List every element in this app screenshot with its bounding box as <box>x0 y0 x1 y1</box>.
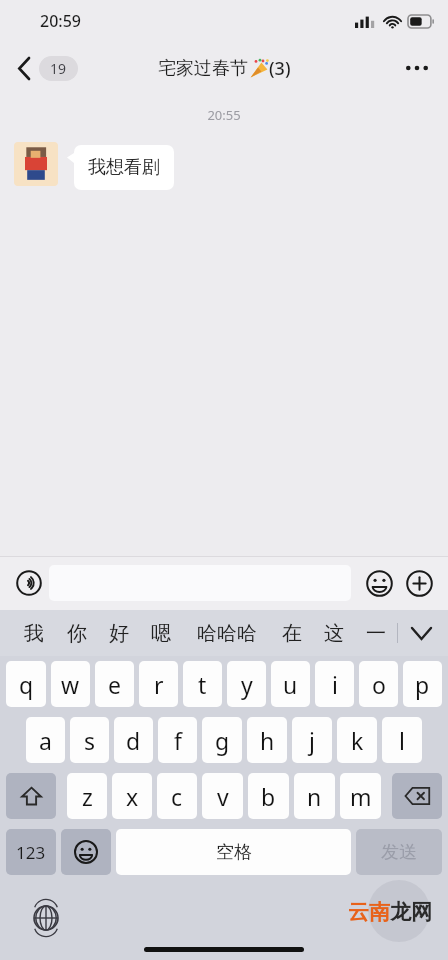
staticText: o <box>372 669 386 700</box>
button[interactable]: p <box>403 661 442 707</box>
staticText: s <box>84 725 96 756</box>
staticText: y <box>241 669 253 700</box>
staticText: i <box>332 669 338 700</box>
staticText: 宅家过春节 <box>158 57 248 80</box>
staticText: c <box>171 781 183 812</box>
button[interactable]: Voice input <box>9 563 49 603</box>
button[interactable]: h <box>247 717 287 763</box>
button[interactable]: 一 <box>355 610 397 656</box>
button[interactable]: Backspace <box>392 773 442 819</box>
staticText: a <box>39 725 52 756</box>
button[interactable]: 在 <box>271 610 313 656</box>
button[interactable]: a <box>26 717 65 763</box>
button[interactable]: 发送 <box>356 829 442 875</box>
button[interactable]: g <box>202 717 242 763</box>
button[interactable]: Switch language <box>26 898 66 938</box>
staticText: 发送 <box>381 841 417 864</box>
button[interactable]: 哈哈哈 <box>182 610 271 656</box>
staticText: f <box>174 725 182 756</box>
button[interactable]: f <box>158 717 197 763</box>
button[interactable]: 嗯 <box>140 610 182 656</box>
staticText: 19 <box>50 59 67 78</box>
staticText: t <box>198 669 207 700</box>
button[interactable]: Emoji <box>359 563 399 603</box>
button[interactable]: 空格 <box>116 829 351 875</box>
staticText: g <box>215 725 230 756</box>
button[interactable]: q <box>6 661 46 707</box>
staticText: 我 <box>24 621 44 646</box>
button[interactable]: More actions <box>399 563 439 603</box>
button[interactable]: j <box>292 717 332 763</box>
staticText: z <box>82 781 93 812</box>
button[interactable]: Hide keyboard <box>398 610 444 656</box>
button[interactable]: l <box>382 717 422 763</box>
staticText: b <box>261 781 276 812</box>
staticText: q <box>19 669 34 700</box>
staticText: 20:59 <box>40 10 81 32</box>
staticText: (3) <box>269 56 291 81</box>
button[interactable]: s <box>70 717 109 763</box>
button[interactable]: 123 <box>6 829 56 875</box>
staticText: l <box>399 725 405 756</box>
button[interactable]: 你 <box>55 610 98 656</box>
button[interactable]: Emoji keyboard <box>61 829 111 875</box>
staticText: 嗯 <box>151 621 171 646</box>
button[interactable]: o <box>359 661 398 707</box>
button[interactable]: u <box>271 661 310 707</box>
staticText: u <box>283 669 298 700</box>
staticText: 哈哈哈 <box>197 621 257 646</box>
staticText: n <box>307 781 322 812</box>
staticText: 我想看剧 <box>88 156 160 179</box>
button[interactable]: k <box>337 717 377 763</box>
staticText: 你 <box>67 621 87 646</box>
staticText: m <box>350 781 372 812</box>
staticText: v <box>217 781 229 812</box>
button[interactable]: 我 <box>12 610 55 656</box>
staticText: 123 <box>16 841 46 864</box>
staticText: 一 <box>366 621 386 646</box>
button[interactable]: y <box>227 661 266 707</box>
staticText: x <box>126 781 139 812</box>
staticText: 在 <box>282 621 302 646</box>
button[interactable]: r <box>139 661 178 707</box>
staticText: h <box>260 725 275 756</box>
button[interactable]: x <box>112 773 152 819</box>
button[interactable]: c <box>157 773 197 819</box>
staticText: w <box>61 669 80 700</box>
staticText: 20:55 <box>0 106 448 124</box>
button[interactable]: z <box>67 773 107 819</box>
button[interactable]: n <box>294 773 335 819</box>
button[interactable]: b <box>248 773 289 819</box>
button[interactable]: d <box>114 717 153 763</box>
staticText: 龙网 <box>390 899 432 925</box>
button[interactable]: Back, 19 unread <box>14 52 82 85</box>
staticText: e <box>108 669 121 700</box>
staticText: 好 <box>109 621 129 646</box>
button[interactable]: 好 <box>98 610 140 656</box>
button[interactable]: i <box>315 661 354 707</box>
staticText: k <box>351 725 364 756</box>
button[interactable]: Shift <box>6 773 56 819</box>
staticText: j <box>309 725 315 756</box>
button[interactable]: 我想看剧 <box>74 145 174 190</box>
button[interactable]: w <box>51 661 90 707</box>
button[interactable]: 这 <box>313 610 355 656</box>
button[interactable]: More options <box>396 55 438 81</box>
button[interactable]: v <box>202 773 243 819</box>
staticText: r <box>154 669 164 700</box>
staticText: 云南 <box>348 899 390 925</box>
button[interactable]: t <box>183 661 222 707</box>
staticText: p <box>415 669 430 700</box>
button[interactable]: e <box>95 661 134 707</box>
staticText: d <box>126 725 141 756</box>
staticText: 这 <box>324 621 344 646</box>
staticText: 空格 <box>216 841 252 864</box>
button[interactable]: m <box>340 773 381 819</box>
